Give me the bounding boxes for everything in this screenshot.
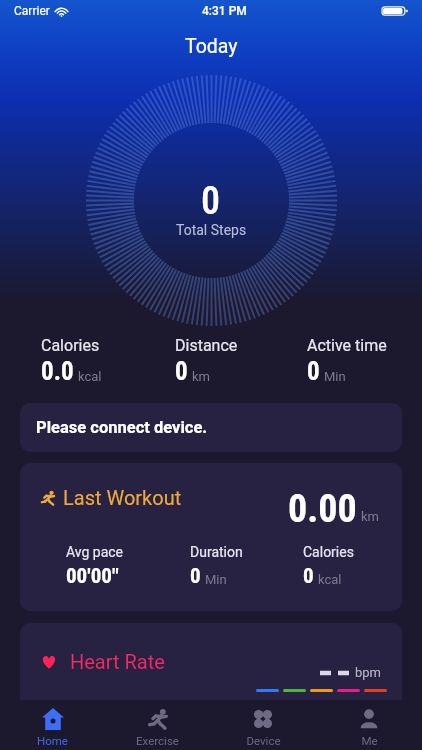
staticText: Home <box>37 734 68 747</box>
staticText: Heart Rate <box>70 650 165 673</box>
staticText: km <box>192 369 210 384</box>
button[interactable]: Home <box>0 700 105 750</box>
staticText: bpm <box>355 665 381 680</box>
staticText: Distance <box>175 336 238 355</box>
button[interactable]: Last Workout <box>20 463 402 611</box>
button[interactable]: Exercise <box>105 700 210 750</box>
staticText: Calories <box>303 544 354 560</box>
staticText: 00'00" <box>66 564 119 589</box>
staticText: Min <box>324 369 346 384</box>
button[interactable]: Heart Rate <box>20 623 402 750</box>
button[interactable]: Please connect device. <box>20 403 402 452</box>
staticText: 0 <box>307 357 320 386</box>
staticText: Exercise <box>136 734 179 747</box>
staticText: Active time <box>307 336 387 355</box>
staticText: Carrier <box>14 4 50 18</box>
staticText: Total Steps <box>176 222 247 238</box>
button[interactable]: Me <box>316 700 422 750</box>
button[interactable]: Device <box>210 700 316 750</box>
staticText: 0.00 <box>288 487 357 532</box>
staticText: kcal <box>78 369 102 384</box>
staticText: Last Workout <box>63 486 182 509</box>
staticText: Today <box>185 35 238 58</box>
staticText: Min <box>205 572 227 587</box>
staticText: Calories <box>41 336 100 355</box>
staticText: Avg pace <box>66 544 124 560</box>
staticText: 4:31 PM <box>202 4 247 18</box>
staticText: Duration <box>190 544 243 560</box>
staticText: 0.0 <box>41 357 74 386</box>
staticText: km <box>361 509 379 524</box>
staticText: 0 <box>303 564 314 589</box>
staticText: 0 <box>190 564 201 589</box>
staticText: Device <box>246 734 281 747</box>
staticText: Please connect device. <box>36 418 208 437</box>
staticText: 0 <box>175 357 188 386</box>
staticText: Me <box>361 734 378 747</box>
staticText: kcal <box>318 572 342 587</box>
staticText: 0 <box>201 179 221 224</box>
